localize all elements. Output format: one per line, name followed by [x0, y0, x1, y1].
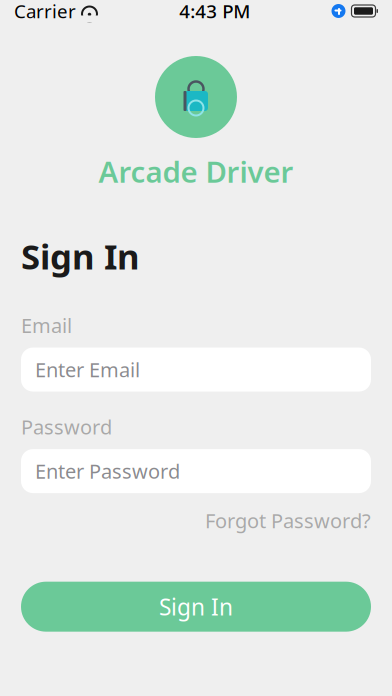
staticText: Enter Email	[35, 356, 140, 383]
button[interactable]: Sign In	[21, 582, 371, 632]
staticText: Sign In	[159, 592, 233, 622]
staticText: Carrier	[14, 0, 76, 23]
button[interactable]: Forgot Password?	[21, 493, 371, 538]
staticText: Sign In	[21, 233, 140, 279]
staticText: Forgot Password?	[205, 507, 371, 534]
staticText: Password	[21, 413, 112, 440]
staticText: Arcade Driver	[98, 152, 293, 191]
staticText: Email	[21, 312, 72, 339]
staticText: 4:43 PM	[179, 0, 250, 23]
staticText: Enter Password	[35, 458, 180, 484]
